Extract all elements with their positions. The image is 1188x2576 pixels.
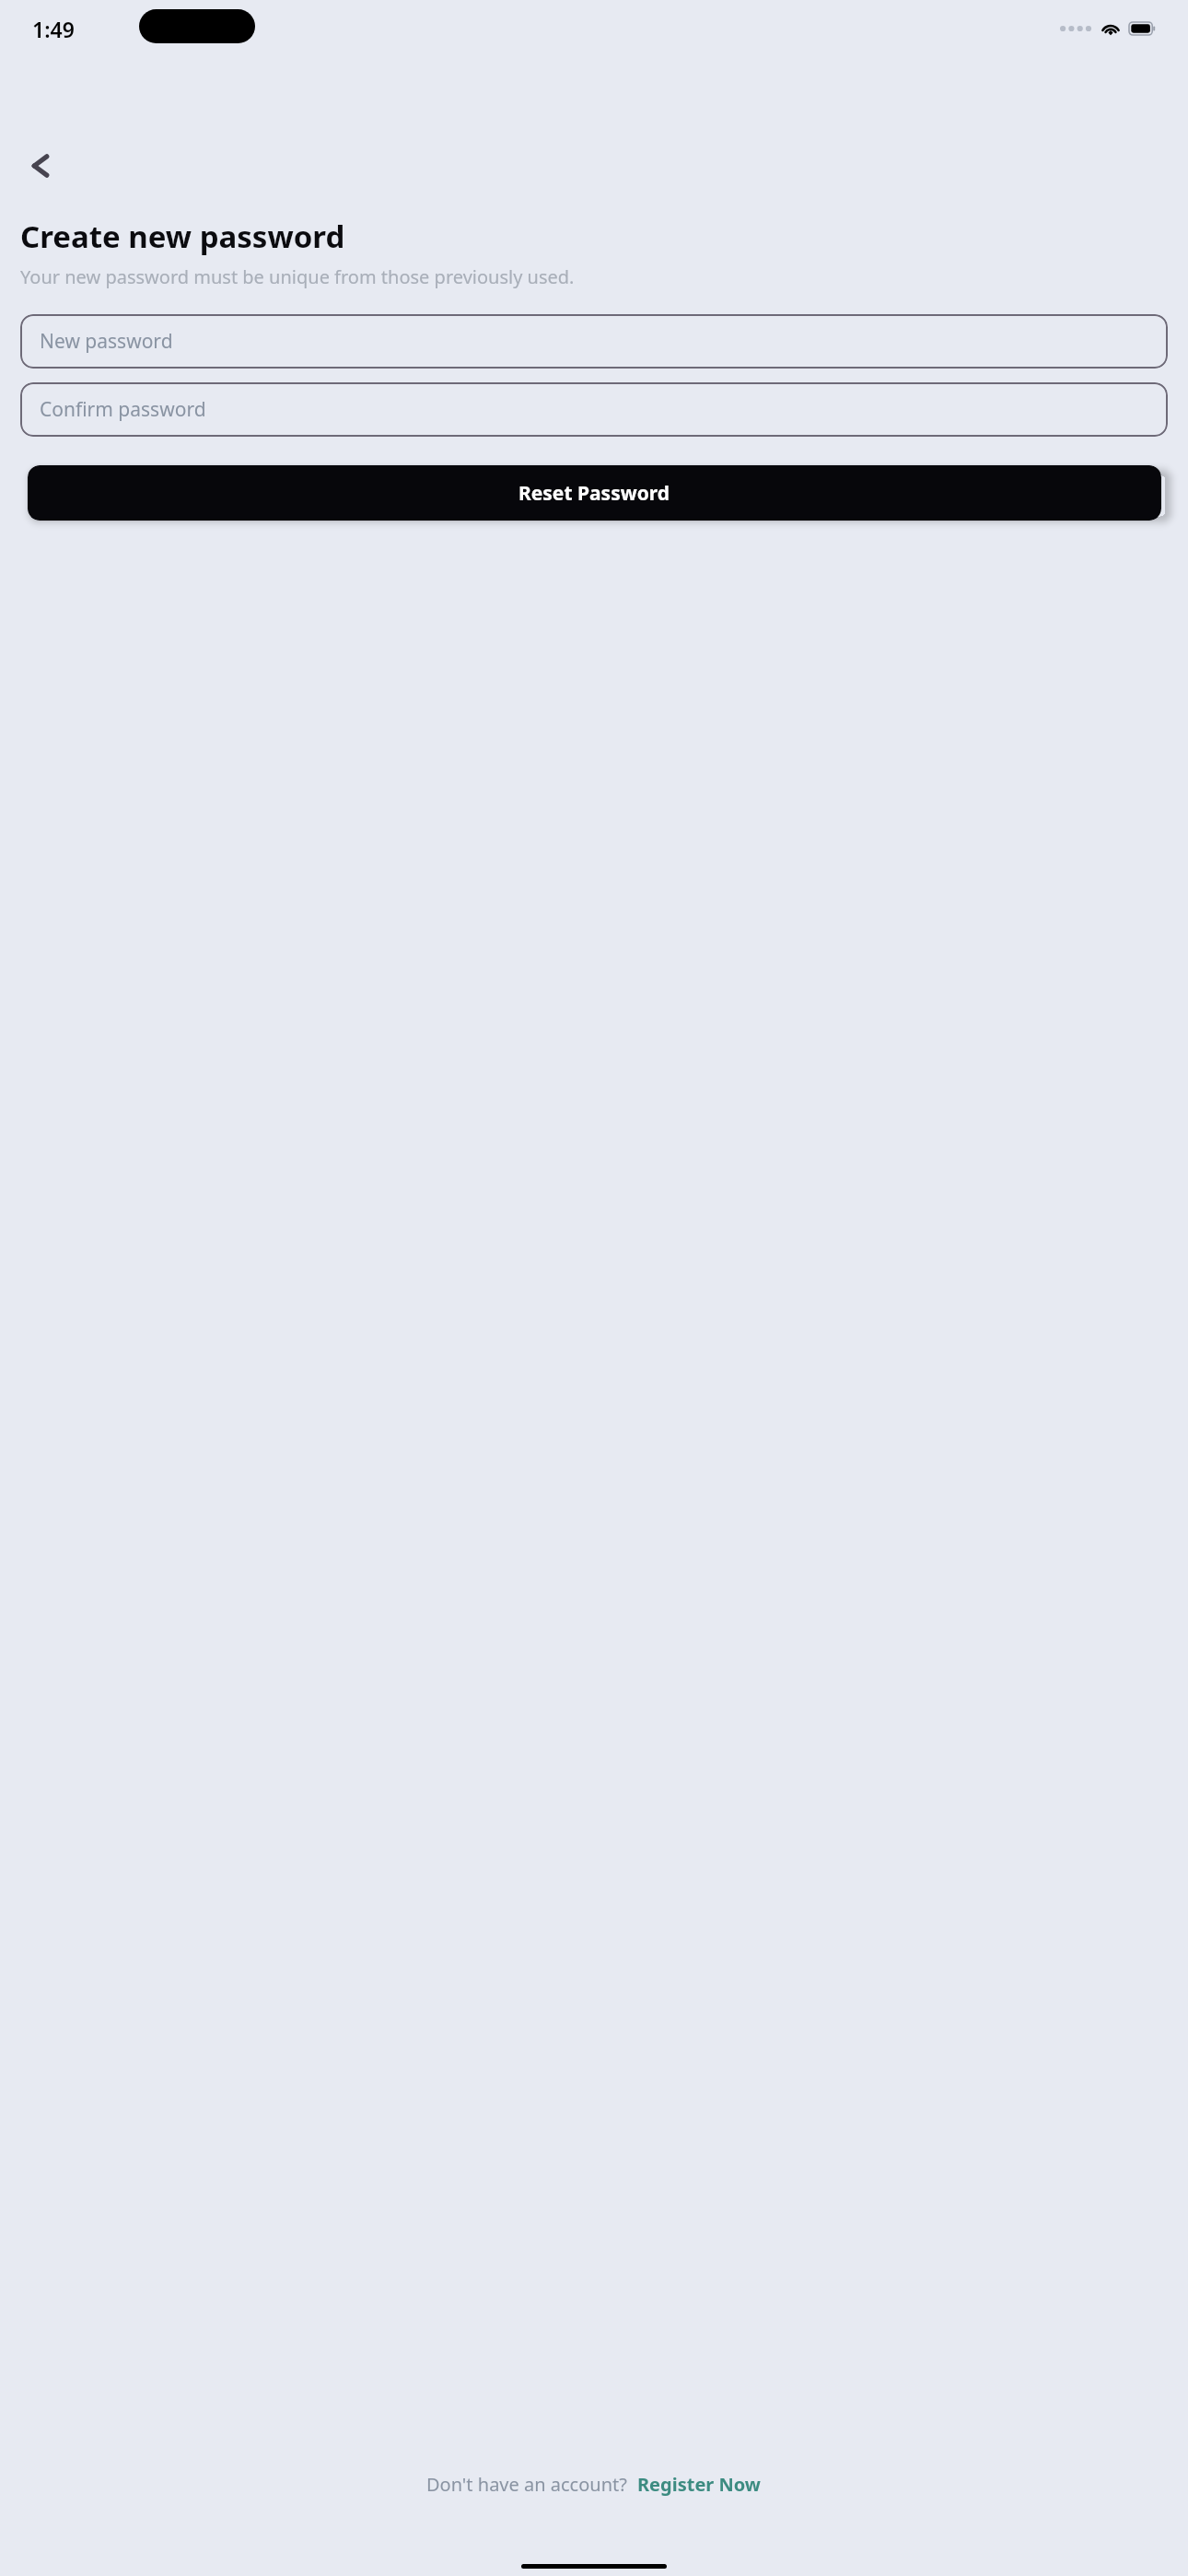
button[interactable]: Register Now bbox=[635, 2468, 763, 2500]
staticText: 1:49 bbox=[32, 15, 75, 43]
button[interactable]: Confirm password bbox=[20, 382, 1168, 437]
button[interactable]: Reset Password bbox=[28, 465, 1161, 521]
staticText: Your new password must be unique from th… bbox=[20, 264, 575, 289]
staticText: Confirm password bbox=[40, 396, 206, 423]
staticText: Create new password bbox=[20, 216, 345, 257]
staticText: Reset Password bbox=[518, 480, 670, 507]
button[interactable]: Back bbox=[11, 136, 70, 195]
staticText: New password bbox=[40, 328, 173, 355]
staticText: Register Now bbox=[637, 2472, 761, 2497]
button[interactable]: New password bbox=[20, 314, 1168, 369]
staticText: Don't have an account? bbox=[426, 2472, 627, 2497]
